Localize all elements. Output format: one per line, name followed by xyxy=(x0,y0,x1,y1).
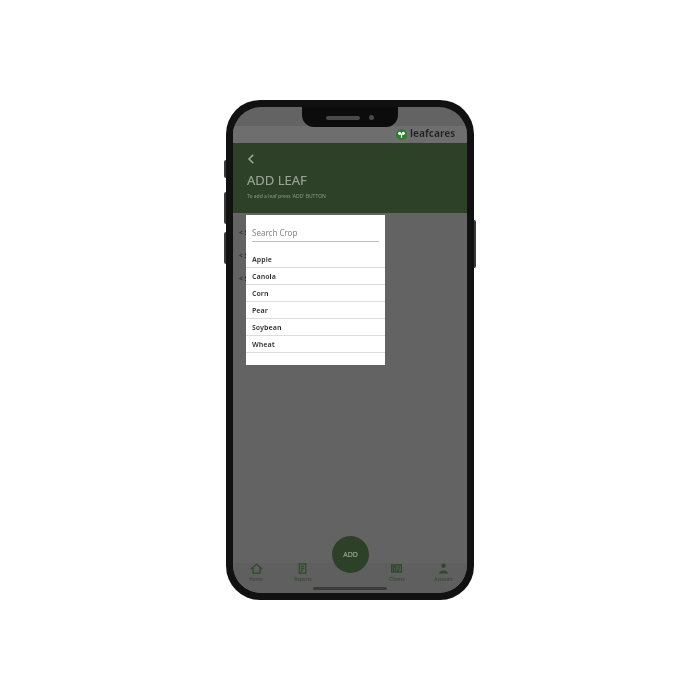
staticText: < Select Leaf > xyxy=(239,251,285,260)
button[interactable]: Home xyxy=(233,563,279,582)
button[interactable]: Wheat xyxy=(246,336,385,353)
staticText: Account xyxy=(434,576,453,582)
button[interactable]: Account xyxy=(420,563,467,582)
staticText: Home xyxy=(249,576,263,582)
staticText: Canola xyxy=(252,272,276,282)
staticText: < Select Leaf > xyxy=(239,228,285,237)
button[interactable]: Reports xyxy=(279,563,326,582)
button[interactable]: Corn xyxy=(246,285,385,302)
button[interactable]: < Select Leaf > xyxy=(233,267,467,290)
staticText: Soybean xyxy=(252,323,282,333)
button[interactable]: ADD xyxy=(332,536,369,573)
staticText: Apple xyxy=(252,255,272,265)
button[interactable]: Soybean xyxy=(246,319,385,336)
staticText: ADD xyxy=(343,550,358,560)
staticText: Corn xyxy=(252,289,269,299)
button[interactable]: Pear xyxy=(246,302,385,319)
staticText: Pear xyxy=(252,306,268,316)
staticText: Clients xyxy=(389,576,405,582)
button[interactable]: Back xyxy=(241,149,261,169)
button[interactable]: < Select Leaf > xyxy=(233,221,467,244)
staticText: Wheat xyxy=(252,340,275,350)
staticText: Reports xyxy=(294,576,312,582)
button[interactable]: Clients xyxy=(373,563,420,582)
button[interactable]: < Select Leaf > xyxy=(233,244,467,267)
button[interactable]: Search Crop xyxy=(252,227,379,242)
button[interactable]: Canola xyxy=(246,268,385,285)
staticText: < Select Leaf > xyxy=(239,274,285,283)
button[interactable]: Apple xyxy=(246,251,385,268)
staticText: leafcares xyxy=(410,126,456,140)
staticText: Search Crop xyxy=(252,227,298,238)
staticText: ADD LEAF xyxy=(247,171,307,189)
staticText: To add a leaf press 'ADD' BUTTON xyxy=(247,193,326,200)
